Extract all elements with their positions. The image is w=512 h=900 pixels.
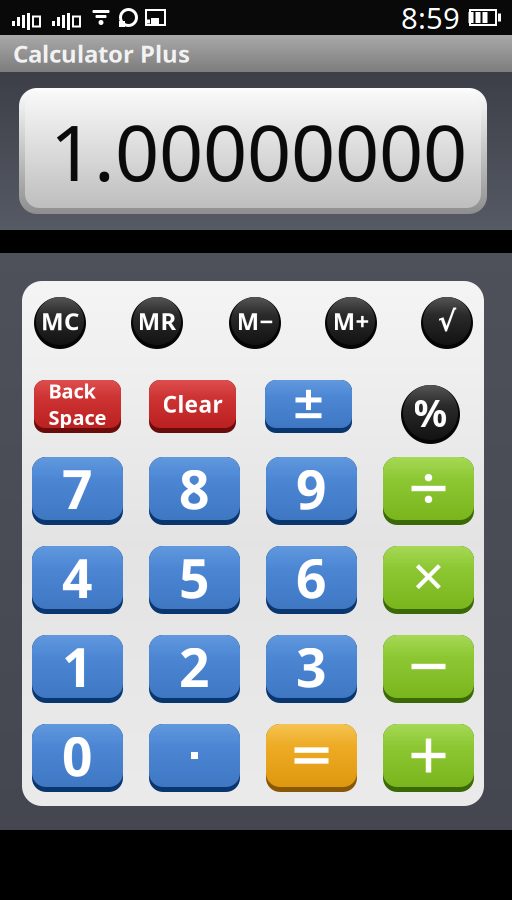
button[interactable]: MC [34,297,86,349]
button[interactable]: 4 [32,546,123,614]
staticText: % [413,388,447,437]
button[interactable] [149,724,240,792]
staticText: 6 [296,542,327,613]
button[interactable]: 7 [32,457,123,525]
button[interactable]: 9 [266,457,357,525]
staticText: 3 [296,631,327,702]
button[interactable]: 0 [32,724,123,792]
staticText: MR [137,305,176,337]
staticText: 1.00000000 [50,100,467,202]
button[interactable]: ✕ [383,546,474,614]
button[interactable] [383,457,474,525]
staticText: M+ [332,305,369,337]
staticText: 5 [179,542,210,613]
staticText: 0 [62,720,93,791]
staticText: 8 [179,453,210,524]
staticText: 7 [62,453,93,524]
staticText: 1 [62,631,93,702]
staticText: MC [41,305,79,337]
button[interactable]: M+ [325,297,377,349]
button[interactable]: % [401,385,460,444]
button[interactable]: Back Space [34,380,121,433]
button[interactable] [383,724,474,792]
button[interactable]: 8 [149,457,240,525]
staticText: Calculator Plus [13,38,190,69]
staticText: 4 [62,542,93,613]
staticText: 2 [179,631,210,702]
staticText: M− [236,305,273,337]
button[interactable]: MR [131,297,183,349]
staticText: √ [437,305,456,337]
staticText: ✕ [410,553,446,602]
button[interactable]: Clear [149,380,236,433]
staticText: 9 [296,453,327,524]
button[interactable]: 1 [32,635,123,703]
staticText: Clear [162,389,222,419]
button[interactable] [266,724,357,792]
button[interactable]: 5 [149,546,240,614]
button[interactable]: M− [229,297,281,349]
button[interactable]: 3 [266,635,357,703]
staticText: Back Space [48,377,106,430]
button[interactable] [383,635,474,703]
staticText: 8:59 [401,0,460,37]
button[interactable] [265,380,352,433]
button[interactable]: 6 [266,546,357,614]
button[interactable]: 2 [149,635,240,703]
button[interactable]: √ [421,297,473,349]
